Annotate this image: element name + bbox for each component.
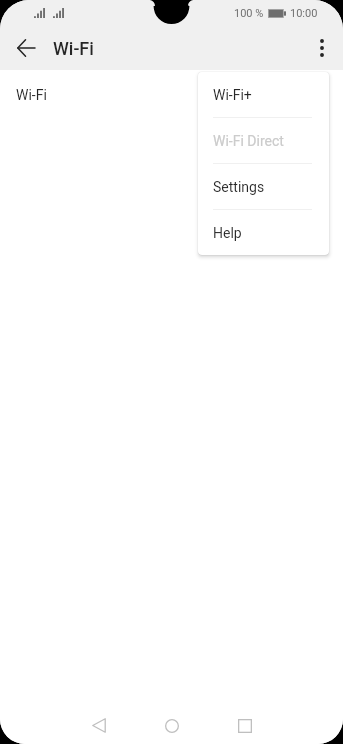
- button[interactable]: More options: [303, 29, 341, 67]
- staticText: Wi-Fi Direct: [213, 133, 284, 149]
- button[interactable]: Back: [77, 707, 121, 744]
- staticText: Wi-Fi: [53, 38, 94, 59]
- button[interactable]: Settings: [198, 164, 329, 209]
- button[interactable]: Recents: [223, 707, 267, 744]
- staticText: 10:00: [290, 7, 318, 20]
- button[interactable]: Help: [198, 210, 329, 255]
- staticText: 100 %: [234, 7, 264, 20]
- button[interactable]: Back: [8, 30, 44, 66]
- button[interactable]: Home: [150, 707, 194, 744]
- staticText: Settings: [213, 179, 265, 195]
- staticText: Wi-Fi: [16, 87, 47, 103]
- staticText: Wi-Fi+: [213, 87, 252, 103]
- staticText: Help: [213, 225, 242, 241]
- button[interactable]: Wi-Fi+: [198, 72, 329, 117]
- button[interactable]: Wi-Fi Direct: [198, 118, 329, 163]
